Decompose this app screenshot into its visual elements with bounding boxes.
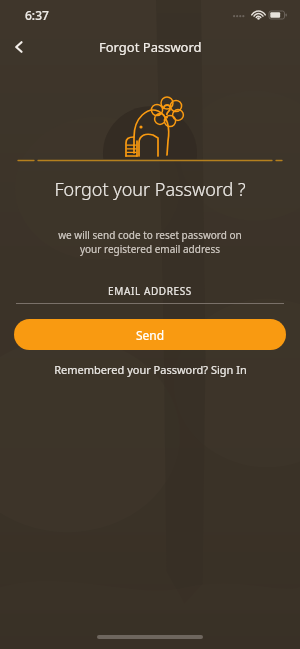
staticText: Remembered your Password? Sign In [54,362,247,377]
button[interactable]: Back [0,30,38,64]
button[interactable]: Send [14,319,286,350]
button[interactable]: Remembered your Password? Sign In [0,362,300,377]
button[interactable]: EMAIL ADDRESS [16,284,284,304]
staticText: Forgot Password [99,38,202,56]
staticText: EMAIL ADDRESS [16,284,284,298]
staticText: Forgot your Password ? [0,177,300,202]
staticText: 6:37 [25,7,49,23]
staticText: Send [136,327,165,343]
staticText: we will send code to reset password on y… [0,228,300,256]
